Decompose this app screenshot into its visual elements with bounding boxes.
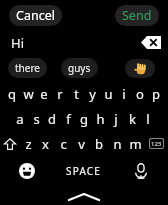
button[interactable]: f — [60, 106, 76, 131]
button[interactable]: i — [116, 81, 132, 106]
staticText: y — [89, 85, 96, 103]
button[interactable]: Backspace — [138, 30, 164, 55]
button[interactable]: Voice input — [130, 160, 152, 182]
button[interactable]: Emoji — [16, 160, 38, 182]
staticText: x — [42, 135, 49, 153]
button[interactable]: Waving hand emoji — [125, 59, 155, 78]
button[interactable]: k — [124, 106, 140, 131]
staticText: i — [122, 85, 126, 103]
staticText: q — [8, 85, 16, 103]
button[interactable]: g — [76, 106, 92, 131]
staticText: l — [146, 110, 150, 128]
button[interactable]: a — [12, 106, 28, 131]
button[interactable]: e — [36, 81, 52, 106]
staticText: c — [60, 135, 67, 153]
button[interactable]: Expand — [0, 193, 168, 205]
staticText: v — [78, 135, 85, 153]
staticText: w — [23, 85, 34, 103]
button[interactable]: SPACE — [38, 156, 130, 186]
staticText: Hi — [11, 34, 24, 52]
staticText: a — [16, 110, 24, 128]
staticText: z — [25, 135, 32, 153]
staticText: m — [129, 135, 142, 153]
staticText: d — [48, 110, 56, 128]
button[interactable]: j — [108, 106, 124, 131]
button[interactable]: u — [100, 81, 116, 106]
button[interactable]: n — [108, 131, 126, 156]
staticText: SPACE — [66, 164, 102, 178]
staticText: j — [114, 110, 118, 128]
staticText: k — [129, 110, 136, 128]
button[interactable]: l — [140, 106, 156, 131]
button[interactable]: w — [20, 81, 36, 106]
staticText: r — [57, 85, 63, 103]
button[interactable]: r — [52, 81, 68, 106]
button[interactable]: m — [126, 131, 144, 156]
staticText: s — [33, 110, 40, 128]
button[interactable]: y — [84, 81, 100, 106]
staticText: n — [113, 135, 122, 153]
staticText: guys — [68, 61, 91, 75]
button[interactable]: v — [72, 131, 90, 156]
staticText: 123 — [151, 140, 162, 148]
staticText: u — [104, 85, 113, 103]
staticText: b — [95, 135, 103, 153]
staticText: o — [136, 85, 144, 103]
button[interactable]: Send — [115, 5, 159, 26]
button[interactable]: there — [8, 58, 47, 78]
button[interactable]: o — [132, 81, 148, 106]
staticText: t — [74, 85, 79, 103]
button[interactable]: p — [148, 81, 164, 106]
button[interactable]: q — [4, 81, 20, 106]
button[interactable]: Numbers and symbols — [144, 131, 168, 156]
button[interactable]: d — [44, 106, 60, 131]
button[interactable]: h — [92, 106, 108, 131]
staticText: p — [152, 85, 160, 103]
button[interactable]: guys — [61, 58, 98, 78]
staticText: g — [80, 110, 88, 128]
staticText: f — [66, 110, 71, 128]
staticText: e — [40, 85, 48, 103]
button[interactable]: Shift — [0, 131, 20, 156]
button[interactable]: t — [68, 81, 84, 106]
button[interactable]: Cancel — [9, 5, 62, 26]
staticText: Cancel — [16, 7, 55, 24]
button[interactable]: c — [54, 131, 72, 156]
staticText: Send — [122, 7, 152, 24]
button[interactable]: s — [28, 106, 44, 131]
button[interactable]: x — [37, 131, 54, 156]
staticText: h — [96, 110, 105, 128]
button[interactable]: z — [20, 131, 37, 156]
staticText: there — [15, 61, 40, 75]
button[interactable]: b — [90, 131, 108, 156]
